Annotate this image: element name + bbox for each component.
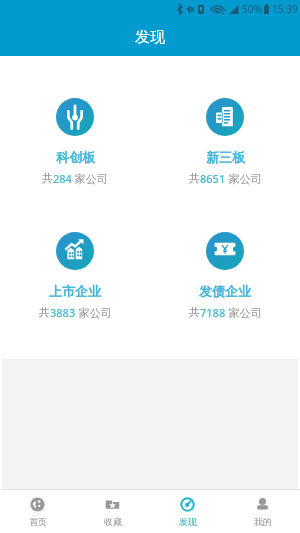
staticText: 家公司 — [76, 305, 112, 320]
button[interactable]: 首页 — [0, 490, 75, 533]
staticText: 共 — [189, 305, 200, 319]
button[interactable]: 收藏 — [75, 490, 150, 533]
staticText: 共 — [189, 171, 200, 185]
staticText: 上市企业 — [49, 283, 101, 299]
staticText: 新三板 — [206, 149, 245, 165]
staticText: 首页 — [29, 516, 47, 527]
button[interactable]: 科创板 — [0, 98, 150, 186]
other: 首页 — [30, 497, 45, 512]
button[interactable]: 发现 — [150, 490, 225, 533]
staticText: 家公司 — [72, 171, 108, 186]
staticText: 科创板 — [56, 149, 95, 165]
staticText: 我的 — [254, 516, 272, 527]
staticText: 家公司 — [226, 305, 262, 320]
button[interactable]: 上市企业 — [0, 232, 150, 320]
staticText: 发现 — [179, 516, 197, 527]
staticText: 3883 — [50, 305, 76, 320]
staticText: 50% — [242, 2, 262, 16]
other: 收藏 — [105, 497, 120, 512]
other: 我的 — [255, 497, 270, 512]
staticText: 收藏 — [104, 516, 122, 527]
staticText: 发现 — [135, 28, 165, 47]
staticText: 15:39 — [272, 2, 298, 16]
staticText: 共 — [42, 171, 53, 185]
button[interactable]: 新三板 — [150, 98, 300, 186]
staticText: 284 — [53, 171, 72, 186]
staticText: 共 — [39, 305, 50, 319]
staticText: 8651 — [200, 171, 226, 186]
button[interactable]: 发债企业 — [150, 232, 300, 320]
button[interactable]: 我的 — [225, 490, 300, 533]
staticText: 家公司 — [226, 171, 262, 186]
other: 发现 — [180, 497, 195, 512]
staticText: 7188 — [200, 305, 226, 320]
staticText: 发债企业 — [199, 283, 251, 299]
